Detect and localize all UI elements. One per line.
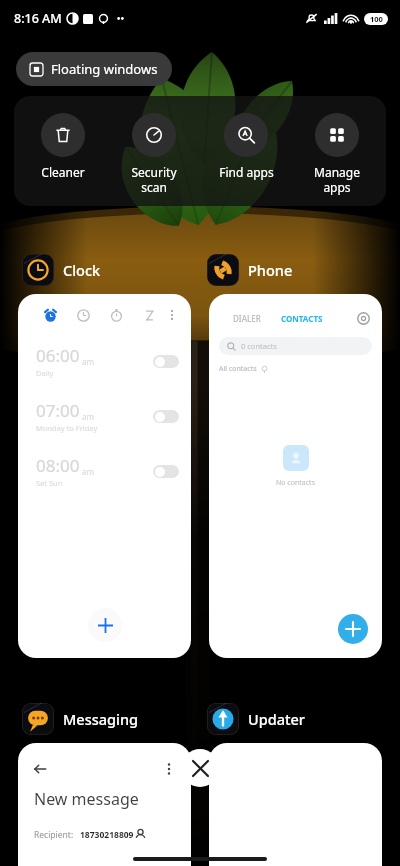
button[interactable]: 08:00 xyxy=(18,454,191,488)
staticText: 0 contacts xyxy=(241,341,277,351)
staticText: am xyxy=(82,466,94,477)
button[interactable]: DIALER xyxy=(209,294,382,658)
staticText: Messaging xyxy=(63,709,139,729)
staticText: Monday to Friday xyxy=(36,423,98,433)
staticText: Manage apps xyxy=(314,164,360,195)
staticText: DIALER xyxy=(233,313,261,324)
staticText: am xyxy=(82,411,94,422)
button[interactable]: World clock xyxy=(77,309,90,322)
button[interactable]: DIALER xyxy=(233,313,261,324)
button[interactable]: Alarm xyxy=(44,309,57,322)
staticText: Clock xyxy=(63,260,101,280)
button[interactable]: Clock xyxy=(22,254,193,286)
button[interactable] xyxy=(209,743,382,866)
staticText: 06:00 xyxy=(36,344,80,367)
button[interactable]: More options xyxy=(161,761,177,777)
button[interactable]: Add alarm xyxy=(88,608,122,642)
button[interactable]: Toggle alarm xyxy=(153,410,179,423)
staticText: 08:00 xyxy=(36,454,80,477)
staticText: 8:16 AM xyxy=(14,10,62,27)
staticText: Sat Sun xyxy=(36,478,63,488)
button[interactable]: Cleaner xyxy=(21,109,105,180)
button[interactable]: 06:00 xyxy=(18,344,191,378)
staticText: Cleaner xyxy=(41,164,85,180)
button[interactable]: 07:00 xyxy=(18,399,191,433)
button[interactable]: Pick contact xyxy=(134,828,147,841)
staticText: Phone xyxy=(248,260,293,280)
button[interactable]: Timer xyxy=(143,309,156,322)
staticText: Recipient: xyxy=(34,829,74,841)
button[interactable]: All contacts xyxy=(219,364,268,374)
button[interactable]: Manage apps xyxy=(295,109,379,195)
button[interactable]: Security scan xyxy=(112,109,196,195)
button[interactable]: Toggle alarm xyxy=(153,465,179,478)
staticText: No contacts xyxy=(276,478,315,488)
button[interactable]: Settings xyxy=(357,312,370,325)
button[interactable]: Alarm xyxy=(18,294,191,658)
staticText: Updater xyxy=(248,709,305,729)
button[interactable]: Updater xyxy=(207,703,378,735)
staticText: Security scan xyxy=(131,164,177,195)
button[interactable]: Back xyxy=(32,761,48,777)
button[interactable]: Close xyxy=(181,749,219,787)
staticText: CONTACTS xyxy=(281,313,323,324)
button[interactable]: Floating windows xyxy=(16,52,172,86)
staticText: 18730218809 xyxy=(80,829,134,841)
staticText: Find apps xyxy=(219,164,274,180)
staticText: 07:00 xyxy=(36,399,80,422)
button[interactable]: Stopwatch xyxy=(110,309,123,322)
button[interactable]: More options xyxy=(165,308,179,322)
staticText: New message xyxy=(34,788,139,810)
button[interactable]: Messaging xyxy=(22,703,193,735)
button[interactable]: 0 contacts xyxy=(219,337,372,355)
staticText: Daily xyxy=(36,368,54,378)
button[interactable]: Find apps xyxy=(204,109,288,180)
button[interactable]: Back xyxy=(18,743,191,866)
button[interactable]: Add contact xyxy=(338,614,368,644)
staticText: All contacts xyxy=(219,364,257,374)
staticText: am xyxy=(82,356,94,367)
staticText: 100 xyxy=(370,14,383,24)
button[interactable]: CONTACTS xyxy=(281,313,323,324)
staticText: Floating windows xyxy=(51,60,158,78)
button[interactable]: Toggle alarm xyxy=(153,355,179,368)
button[interactable]: Phone xyxy=(207,254,378,286)
